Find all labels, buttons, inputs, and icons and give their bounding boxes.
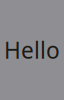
staticText: Hello [4,35,60,65]
